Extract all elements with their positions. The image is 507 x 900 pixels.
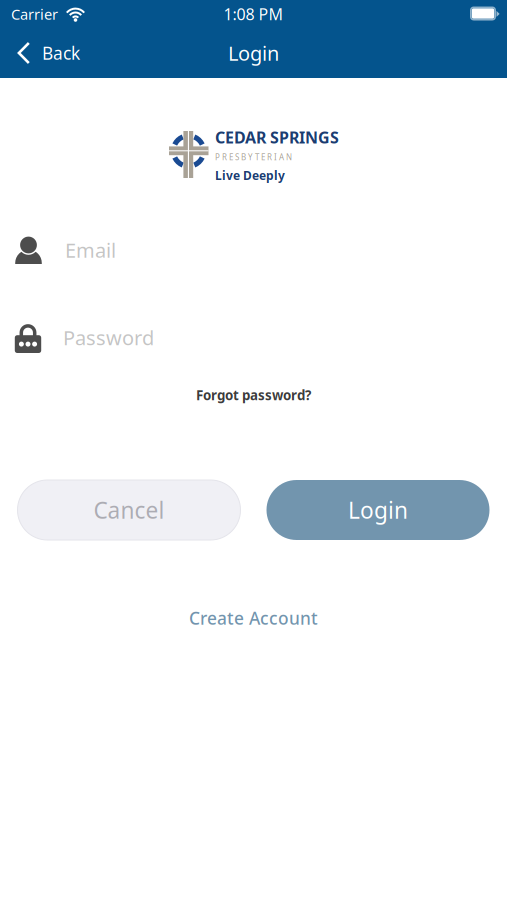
button[interactable]: Login xyxy=(266,480,489,540)
staticText: Carrier xyxy=(11,4,58,24)
staticText: Cancel xyxy=(93,495,164,525)
button[interactable]: Forgot password? xyxy=(186,384,321,406)
button[interactable]: Back xyxy=(0,28,94,78)
staticText: Login xyxy=(348,495,408,525)
staticText: P R E S B Y T E R I A N xyxy=(215,152,292,162)
staticText: 1:08 PM xyxy=(223,3,283,25)
staticText: Password xyxy=(63,324,154,351)
staticText: Live Deeply xyxy=(215,167,285,183)
staticText: Email xyxy=(65,237,116,263)
staticText: CEDAR SPRINGS xyxy=(215,127,339,148)
button[interactable]: Cancel xyxy=(17,480,240,540)
button[interactable]: Create Account xyxy=(179,606,328,630)
button[interactable]: Password xyxy=(0,322,507,353)
button[interactable]: Email xyxy=(0,236,507,264)
staticText: Forgot password? xyxy=(196,386,311,404)
staticText: Create Account xyxy=(189,606,318,629)
staticText: Login xyxy=(228,40,279,66)
staticText: Back xyxy=(42,41,80,64)
